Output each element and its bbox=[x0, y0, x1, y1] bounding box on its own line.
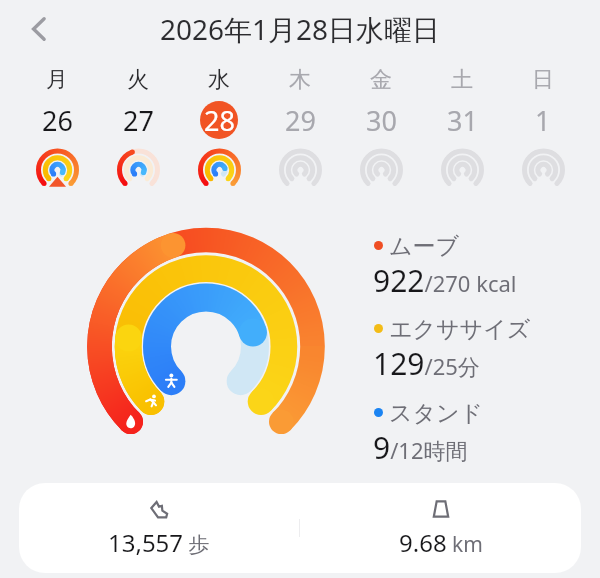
staticText: 31 bbox=[447, 102, 478, 139]
staticText: 月 bbox=[46, 66, 68, 94]
staticText: 日 bbox=[532, 66, 554, 94]
staticText: 922/270 kcal bbox=[373, 260, 517, 301]
staticText: 1 bbox=[535, 102, 551, 139]
staticText: 129/25分 bbox=[373, 343, 480, 384]
staticText: 28 bbox=[204, 102, 235, 139]
button[interactable]: Back bbox=[23, 13, 55, 45]
button[interactable]: 9.68 km bbox=[300, 483, 581, 573]
staticText: 27 bbox=[123, 102, 154, 139]
staticText: 土 bbox=[451, 66, 473, 94]
staticText: 木 bbox=[289, 66, 311, 94]
staticText: 26 bbox=[42, 102, 73, 139]
button[interactable]: エクササイズ bbox=[373, 313, 583, 375]
button[interactable]: ムーブ bbox=[373, 230, 583, 292]
staticText: 火 bbox=[127, 66, 149, 94]
button[interactable]: 月 bbox=[17, 57, 97, 190]
button[interactable]: スタンド bbox=[373, 397, 583, 459]
staticText: 29 bbox=[285, 102, 316, 139]
button[interactable]: 13,557 歩 bbox=[19, 483, 299, 573]
button[interactable]: 木 bbox=[259, 57, 340, 190]
staticText: スタンド bbox=[389, 399, 484, 428]
staticText: ムーブ bbox=[389, 232, 460, 261]
staticText: 金 bbox=[370, 66, 392, 94]
button[interactable]: 土 bbox=[421, 57, 502, 190]
staticText: 2026年1月28日水曜日 bbox=[160, 10, 441, 48]
staticText: 30 bbox=[366, 102, 397, 139]
button[interactable]: 火 bbox=[97, 57, 178, 190]
staticText: 水 bbox=[208, 66, 230, 94]
button[interactable]: 水 bbox=[178, 57, 259, 190]
staticText: 9/12時間 bbox=[373, 427, 468, 468]
staticText: 9.68 km bbox=[399, 526, 483, 559]
button[interactable]: 金 bbox=[340, 57, 421, 190]
staticText: 13,557 歩 bbox=[108, 526, 210, 559]
staticText: エクササイズ bbox=[389, 315, 531, 344]
button[interactable]: 日 bbox=[502, 57, 583, 190]
